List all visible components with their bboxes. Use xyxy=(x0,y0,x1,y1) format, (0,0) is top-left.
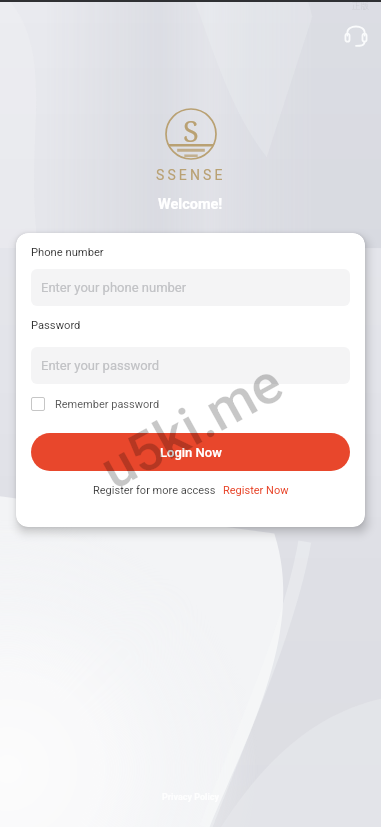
staticText: SSENSE xyxy=(156,167,226,183)
staticText: Enter your phone number xyxy=(41,280,187,295)
staticText: Enter your password xyxy=(41,358,160,373)
staticText: Register for more access xyxy=(93,484,216,497)
button[interactable]: Remember password xyxy=(31,397,160,411)
button[interactable]: Login Now xyxy=(31,433,350,471)
button[interactable]: Privacy Policy xyxy=(162,792,220,803)
button[interactable]: Enter your password xyxy=(31,347,350,384)
staticText: Phone number xyxy=(31,246,104,259)
staticText: S xyxy=(183,111,199,150)
staticText: Register Now xyxy=(223,484,289,497)
button[interactable]: Customer service xyxy=(340,19,372,51)
staticText: u5ki.me xyxy=(89,350,294,502)
staticText: 正版 xyxy=(352,1,369,12)
staticText: Privacy Policy xyxy=(162,792,220,803)
staticText: Welcome! xyxy=(158,196,223,213)
button[interactable]: Enter your phone number xyxy=(31,269,350,306)
staticText: Login Now xyxy=(160,445,222,460)
button[interactable]: Register Now xyxy=(223,484,289,497)
staticText: Remember password xyxy=(55,398,160,411)
staticText: Password xyxy=(31,319,81,332)
